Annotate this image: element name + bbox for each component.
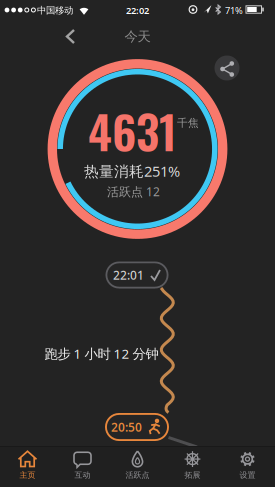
- staticText: 22:01: [113, 267, 144, 283]
- button[interactable]: 互动: [55, 446, 110, 487]
- button[interactable]: [214, 55, 239, 80]
- staticText: 中国移动: [37, 5, 73, 16]
- button[interactable]: 设置: [220, 446, 275, 487]
- staticText: 4631: [88, 96, 177, 165]
- button[interactable]: 活跃点: [110, 446, 165, 487]
- staticText: 热量消耗251%: [84, 161, 180, 181]
- staticText: 22:02: [126, 4, 149, 17]
- button[interactable]: 主页: [0, 446, 55, 487]
- staticText: 跑步 1 小时 12 分钟: [44, 345, 158, 362]
- staticText: 活跃点: [125, 470, 149, 480]
- staticText: 20:50: [111, 419, 142, 435]
- staticText: 活跃点 12: [107, 183, 160, 199]
- staticText: 千焦: [177, 116, 199, 129]
- button[interactable]: [62, 28, 78, 45]
- staticText: 71%: [225, 4, 243, 17]
- staticText: 设置: [239, 470, 255, 480]
- staticText: 互动: [74, 470, 90, 480]
- staticText: 主页: [19, 470, 35, 480]
- button[interactable]: 今天: [124, 28, 150, 45]
- button[interactable]: 拓展: [165, 446, 220, 487]
- staticText: 拓展: [184, 470, 200, 480]
- button[interactable]: 22:01: [105, 261, 168, 288]
- button[interactable]: 20:50: [105, 413, 169, 441]
- staticText: 今天: [124, 28, 150, 45]
